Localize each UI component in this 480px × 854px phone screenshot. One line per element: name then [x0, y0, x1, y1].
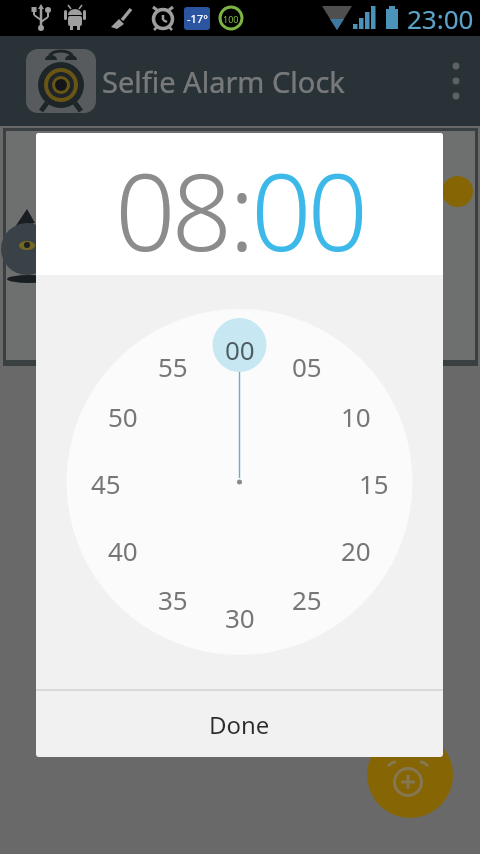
button[interactable]: 35 [143, 579, 203, 619]
button[interactable]: 25 [277, 579, 337, 619]
staticText: 08 [115, 138, 229, 280]
button[interactable] [432, 36, 480, 126]
button[interactable]: 30 [210, 597, 270, 637]
staticText: 10 [341, 399, 371, 434]
button[interactable]: 05 [277, 346, 337, 386]
staticText: Done [209, 708, 270, 741]
staticText: : [229, 138, 251, 280]
button[interactable]: 15 [344, 463, 404, 503]
staticText: 55 [158, 349, 188, 384]
button[interactable]: Done [36, 691, 443, 757]
staticText: 100 [223, 13, 239, 25]
staticText: 05 [292, 349, 322, 384]
staticText: Selfie Alarm Clock [102, 62, 345, 101]
button[interactable] [442, 176, 473, 207]
staticText: -17° [187, 11, 208, 26]
staticText: 45 [91, 466, 121, 501]
staticText: 30 [225, 600, 255, 635]
staticText: 00 [251, 138, 365, 280]
button[interactable]: 10 [326, 396, 386, 436]
staticText: 20 [341, 533, 371, 568]
staticText: 15 [359, 466, 389, 501]
button[interactable]: 50 [93, 396, 153, 436]
button[interactable]: 40 [93, 530, 153, 570]
button[interactable]: 55 [143, 346, 203, 386]
staticText: 40 [108, 533, 138, 568]
staticText: 35 [158, 582, 188, 617]
button[interactable] [367, 732, 453, 818]
button[interactable]: 00 [251, 138, 365, 280]
button[interactable]: 20 [326, 530, 386, 570]
staticText: 50 [108, 399, 138, 434]
button[interactable]: 08 [115, 138, 229, 280]
staticText: 00 [225, 332, 255, 367]
button[interactable]: 00 [210, 329, 270, 369]
staticText: 23:00 [407, 1, 474, 36]
staticText: 25 [292, 582, 322, 617]
button[interactable]: 45 [76, 463, 136, 503]
